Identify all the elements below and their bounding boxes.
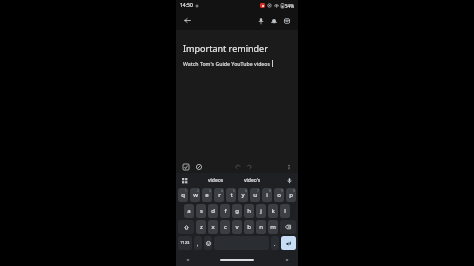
button[interactable]: a <box>184 204 194 218</box>
staticText: r <box>218 191 221 199</box>
staticText: q <box>181 191 185 199</box>
button[interactable]: c <box>220 220 230 234</box>
staticText: f <box>224 207 227 215</box>
staticText: i <box>266 191 268 199</box>
button[interactable]: r <box>214 188 224 202</box>
staticText: l <box>284 207 286 215</box>
staticText: 2 <box>197 189 199 193</box>
button[interactable]: h <box>244 204 254 218</box>
staticText: b <box>247 223 251 231</box>
button[interactable]: m <box>268 220 278 234</box>
staticText: 5 <box>233 189 235 193</box>
staticText: o <box>277 191 281 199</box>
button[interactable]: i <box>262 188 272 202</box>
button[interactable]: Keyboard switcher <box>283 256 290 263</box>
button[interactable]: Keyboard options <box>180 176 189 185</box>
button[interactable]: v <box>232 220 242 234</box>
button[interactable]: Add checkbox <box>181 162 190 171</box>
staticText: ?123 <box>180 240 190 246</box>
button[interactable]: Back <box>181 14 194 27</box>
staticText: 54% <box>285 3 294 9</box>
staticText: 14:50 <box>180 2 193 9</box>
staticText: s <box>200 207 203 215</box>
button[interactable]: Archive <box>280 14 293 27</box>
button[interactable]: f <box>220 204 230 218</box>
staticText: . <box>274 240 276 247</box>
button[interactable]: Backspace <box>280 220 296 234</box>
button[interactable]: u <box>250 188 260 202</box>
staticText: z <box>200 223 203 231</box>
staticText: c <box>224 223 227 231</box>
staticText: e <box>205 191 209 199</box>
button[interactable]: e <box>202 188 212 202</box>
button[interactable]: g <box>232 204 242 218</box>
button[interactable]: l <box>280 204 290 218</box>
staticText: k <box>271 207 275 215</box>
button[interactable]: , <box>194 236 202 250</box>
staticText: 9 <box>281 189 283 193</box>
button[interactable]: d <box>208 204 218 218</box>
staticText: 3 <box>209 189 211 193</box>
staticText: m <box>270 223 276 231</box>
staticText: h <box>247 207 251 215</box>
staticText: y <box>241 191 245 199</box>
button[interactable]: b <box>244 220 254 234</box>
staticText: 7 <box>257 189 259 193</box>
button[interactable]: j <box>256 204 266 218</box>
staticText: 1 <box>185 189 187 193</box>
button[interactable]: Hide keyboard <box>184 256 191 263</box>
button[interactable]: y <box>238 188 248 202</box>
button[interactable]: Emoji <box>204 236 212 250</box>
staticText: Watch Tom's Guide YouTube videos <box>183 60 271 67</box>
button[interactable]: Shift <box>178 220 194 234</box>
button[interactable]: w <box>190 188 200 202</box>
staticText: a <box>187 207 191 215</box>
button[interactable]: x <box>208 220 218 234</box>
button[interactable]: More options <box>284 162 293 171</box>
staticText: j <box>260 207 262 215</box>
staticText: 8 <box>269 189 271 193</box>
button[interactable]: n <box>256 220 266 234</box>
button[interactable]: Format <box>194 162 203 171</box>
button[interactable]: t <box>226 188 236 202</box>
staticText: d <box>211 207 215 215</box>
button[interactable]: Reminder <box>267 14 280 27</box>
staticText: , <box>197 240 199 247</box>
button[interactable]: Voice input <box>285 176 294 185</box>
staticText: n <box>259 223 263 231</box>
staticText: u <box>253 191 257 199</box>
button[interactable]: videos <box>208 177 224 184</box>
staticText: 0 <box>293 189 295 193</box>
staticText: 6 <box>245 189 247 193</box>
button[interactable]: q <box>178 188 188 202</box>
button[interactable]: o <box>274 188 284 202</box>
button[interactable]: k <box>268 204 278 218</box>
staticText: p <box>289 191 293 199</box>
button[interactable]: z <box>196 220 206 234</box>
staticText: 4 <box>221 189 223 193</box>
staticText: w <box>193 191 198 199</box>
button[interactable]: Important reminder <box>183 42 268 54</box>
button[interactable]: Enter <box>281 236 296 250</box>
button[interactable]: s <box>196 204 206 218</box>
button[interactable]: Pin <box>254 14 267 27</box>
button[interactable]: Watch Tom's Guide YouTube videos <box>183 60 273 67</box>
staticText: g <box>235 207 239 215</box>
button[interactable]: . <box>271 236 279 250</box>
staticText: x <box>211 223 215 231</box>
staticText: t <box>230 191 233 199</box>
staticText: v <box>235 223 239 231</box>
button[interactable]: p <box>286 188 296 202</box>
button[interactable]: ?123 <box>178 236 192 250</box>
button[interactable]: video's <box>244 177 261 184</box>
